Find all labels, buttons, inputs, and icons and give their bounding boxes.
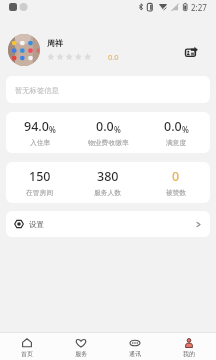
button[interactable]: 我的 <box>162 333 216 360</box>
staticText: 物业费收缴率 <box>88 138 129 147</box>
staticText: 暂无标签信息 <box>15 86 59 95</box>
button[interactable]: 设置 <box>6 211 210 237</box>
staticText: 服务人数 <box>94 188 122 197</box>
staticText: 入住率 <box>30 138 51 147</box>
staticText: % <box>114 124 121 135</box>
button[interactable]: 服务 <box>54 333 108 360</box>
staticText: 满意度 <box>166 138 187 147</box>
button[interactable]: 通讯 <box>108 333 162 360</box>
staticText: 150 <box>29 168 51 185</box>
button[interactable]: 暂无标签信息 <box>6 76 210 103</box>
staticText: % <box>182 124 189 135</box>
staticText: 0 <box>172 168 180 185</box>
staticText: 380 <box>97 168 119 185</box>
staticText: 2:27 <box>191 2 207 13</box>
staticText: 0.0 <box>164 118 182 135</box>
staticText: 在管房间 <box>26 188 54 197</box>
staticText: 服务 <box>75 350 87 358</box>
staticText: 通讯 <box>129 350 141 358</box>
button[interactable]: Share business card <box>178 37 204 63</box>
staticText: 我的 <box>183 350 195 358</box>
staticText: 94.0 <box>24 118 49 135</box>
staticText: 0.0 <box>108 52 119 62</box>
staticText: 周祥 <box>47 38 63 48</box>
staticText: 首页 <box>21 350 33 358</box>
staticText: 0.0 <box>96 118 114 135</box>
staticText: 设置 <box>29 220 44 229</box>
staticText: % <box>49 124 56 135</box>
staticText: 被赞数 <box>166 188 187 197</box>
button[interactable]: 首页 <box>0 333 54 360</box>
